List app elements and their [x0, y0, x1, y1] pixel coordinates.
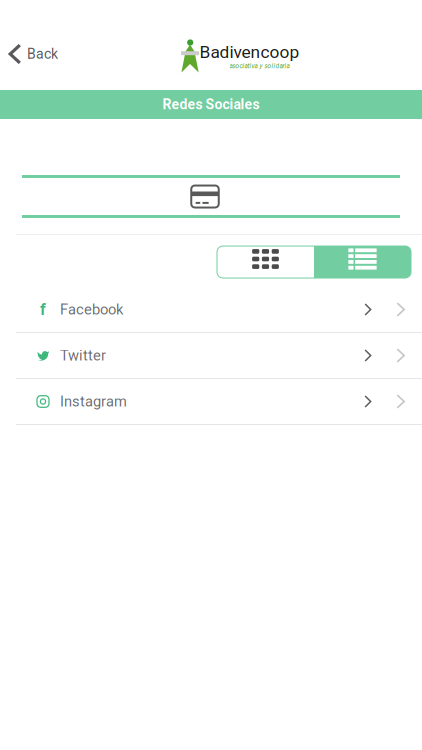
staticText: Redes Sociales — [162, 96, 259, 113]
staticText: f — [40, 300, 46, 319]
staticText: Twitter — [60, 347, 106, 364]
staticText: Facebook — [60, 301, 123, 318]
staticText: Back — [27, 46, 58, 62]
staticText: Instagram — [60, 393, 127, 410]
button[interactable]: Twitter — [0, 333, 422, 379]
button[interactable]: List view — [314, 246, 411, 278]
staticText: asociativa y solidaria — [229, 62, 289, 70]
button[interactable]: Instagram — [0, 379, 422, 425]
button[interactable]: Back — [0, 23, 68, 67]
button[interactable]: f — [0, 287, 422, 333]
staticText: Badivencoop — [199, 42, 299, 62]
button[interactable]: Grid view — [217, 246, 314, 278]
